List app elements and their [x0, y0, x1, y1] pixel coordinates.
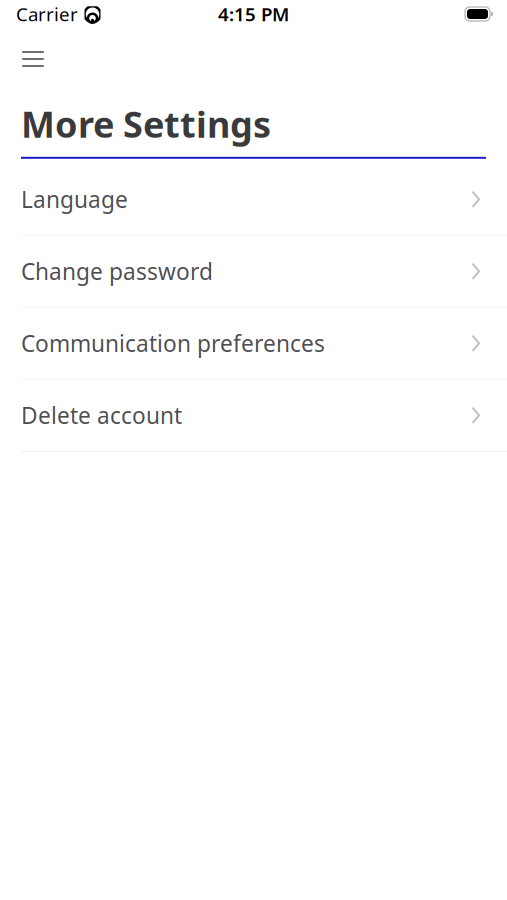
staticText: More Settings	[21, 100, 271, 148]
staticText: 4:15 PM	[218, 2, 289, 26]
staticText: Change password	[21, 256, 213, 286]
button[interactable]: Delete account	[0, 380, 507, 452]
staticText: Language	[21, 184, 128, 214]
button[interactable]: Menu	[8, 40, 58, 78]
staticText: Delete account	[21, 400, 182, 430]
staticText: Communication preferences	[21, 328, 325, 358]
staticText: Carrier	[16, 2, 78, 26]
button[interactable]: Language	[0, 164, 507, 236]
button[interactable]: Communication preferences	[0, 308, 507, 380]
button[interactable]: Change password	[0, 236, 507, 308]
